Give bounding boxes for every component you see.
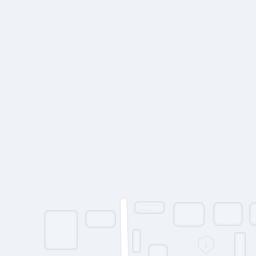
button[interactable]: Tile 3 (134, 201, 165, 214)
button[interactable]: Tile 4 (173, 202, 205, 227)
button[interactable]: Bar 1 (132, 229, 141, 253)
button[interactable]: Tile 2 (85, 210, 116, 228)
button[interactable]: Tile 7 (148, 244, 168, 256)
button[interactable]: Tile 5 (213, 202, 243, 226)
button[interactable]: Bar 2 (234, 232, 246, 256)
button[interactable]: Tile 6 (249, 202, 256, 226)
button[interactable]: Tile 1 (44, 210, 78, 250)
